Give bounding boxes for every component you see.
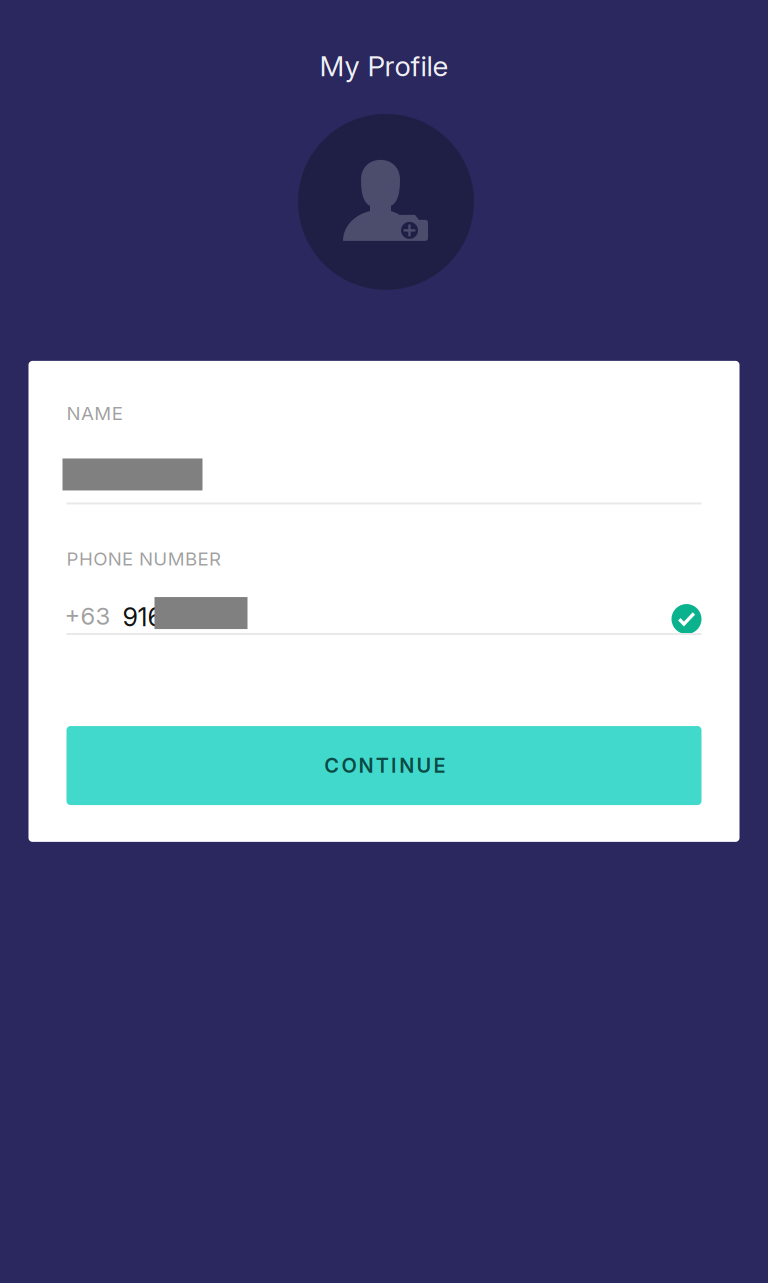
staticText: 916 (122, 602, 162, 632)
button[interactable]: NAME (66, 402, 701, 504)
staticText: CONTINUE (324, 753, 451, 778)
staticText: +63 (64, 601, 110, 630)
staticText: PHONE NUMBER (66, 547, 221, 570)
button[interactable]: Change profile photo (298, 114, 474, 290)
button[interactable]: CONTINUE (66, 726, 701, 805)
button[interactable]: PHONE NUMBER (66, 547, 701, 635)
staticText: NAME (66, 402, 123, 424)
staticText: My Profile (319, 49, 448, 83)
